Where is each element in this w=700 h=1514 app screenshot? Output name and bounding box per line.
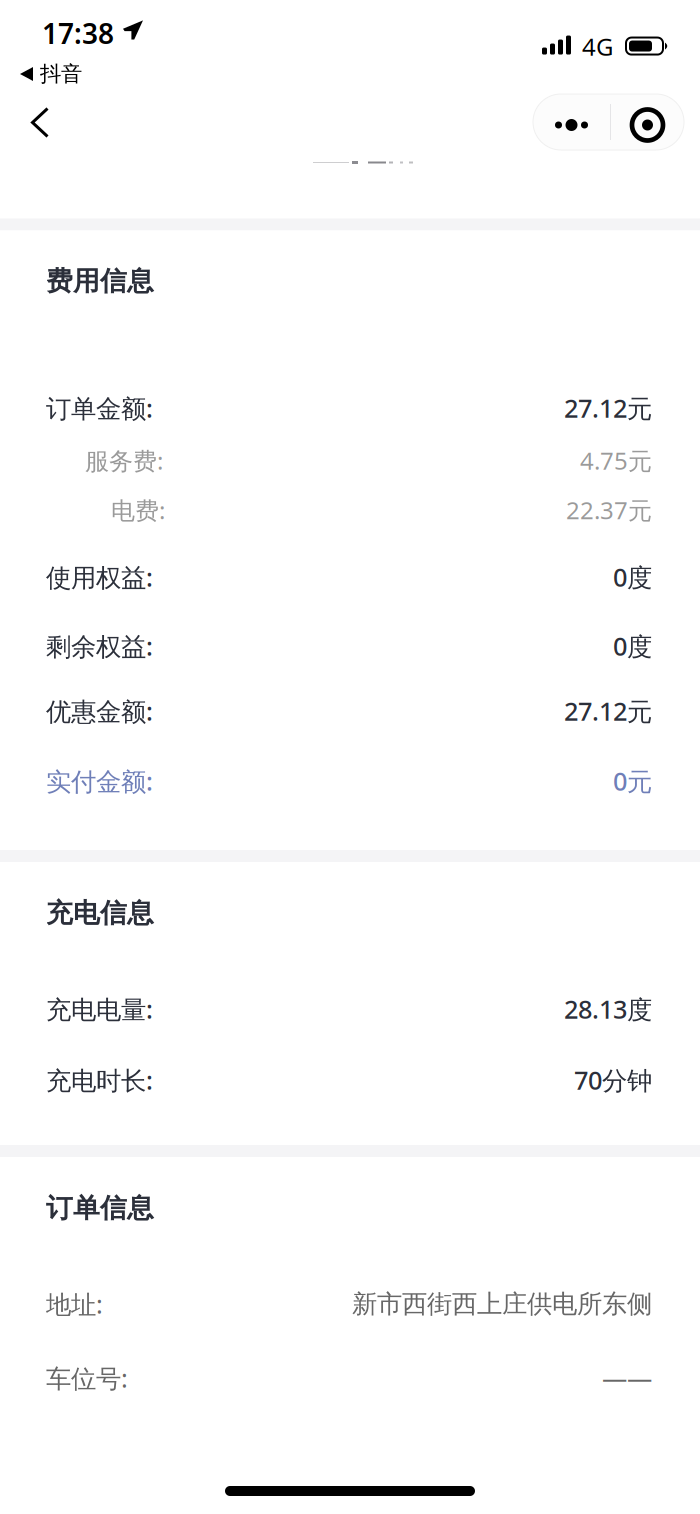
staticText: 实付金额: xyxy=(46,764,153,798)
button[interactable]: 剩余权益: xyxy=(0,626,700,666)
staticText: 充电时长: xyxy=(46,1063,153,1097)
button[interactable]: 充电电量: xyxy=(0,989,700,1029)
button[interactable]: Back xyxy=(0,85,80,159)
staticText: 抖音 xyxy=(40,61,82,87)
button[interactable]: Close mini program xyxy=(611,94,684,150)
staticText: 0度 xyxy=(613,629,652,663)
button[interactable]: 优惠金额: xyxy=(0,691,700,731)
button[interactable]: 车位号: xyxy=(0,1358,700,1398)
staticText: 地址: xyxy=(46,1287,103,1321)
staticText: 服务费: xyxy=(85,445,163,476)
staticText: 电费: xyxy=(111,494,165,526)
staticText: 充电信息 xyxy=(46,897,154,929)
button[interactable]: 服务费: xyxy=(0,440,700,480)
button[interactable]: 使用权益: xyxy=(0,557,700,597)
staticText: 优惠金额: xyxy=(46,694,153,728)
staticText: 使用权益: xyxy=(46,560,153,594)
staticText: 27.12元 xyxy=(564,391,652,425)
button[interactable]: 实付金额: xyxy=(0,761,700,801)
staticText: 订单金额: xyxy=(46,391,153,425)
staticText: 订单信息 xyxy=(46,1192,154,1224)
staticText: 充电电量: xyxy=(46,992,153,1026)
button[interactable]: 电费: xyxy=(0,490,700,530)
button[interactable]: 地址: xyxy=(0,1284,700,1324)
staticText: 费用信息 xyxy=(46,265,154,297)
staticText: 0元 xyxy=(613,764,652,798)
staticText: 4.75元 xyxy=(580,445,652,476)
staticText: 17:38 xyxy=(42,15,114,52)
staticText: 新市西街西上庄供电所东侧 xyxy=(352,1288,652,1319)
staticText: 0度 xyxy=(613,560,652,594)
button[interactable]: More xyxy=(533,94,610,150)
staticText: 4G xyxy=(582,31,613,62)
staticText: 22.37元 xyxy=(566,494,652,526)
staticText: 剩余权益: xyxy=(46,629,153,663)
button[interactable]: 充电时长: xyxy=(0,1060,700,1100)
staticText: —— xyxy=(602,1361,652,1395)
staticText: 28.13度 xyxy=(564,992,652,1026)
staticText: 车位号: xyxy=(46,1361,128,1395)
staticText: 27.12元 xyxy=(564,694,652,728)
button[interactable]: 订单金额: xyxy=(0,388,700,428)
button[interactable]: 抖音 xyxy=(0,60,82,88)
staticText: 70分钟 xyxy=(574,1063,652,1097)
